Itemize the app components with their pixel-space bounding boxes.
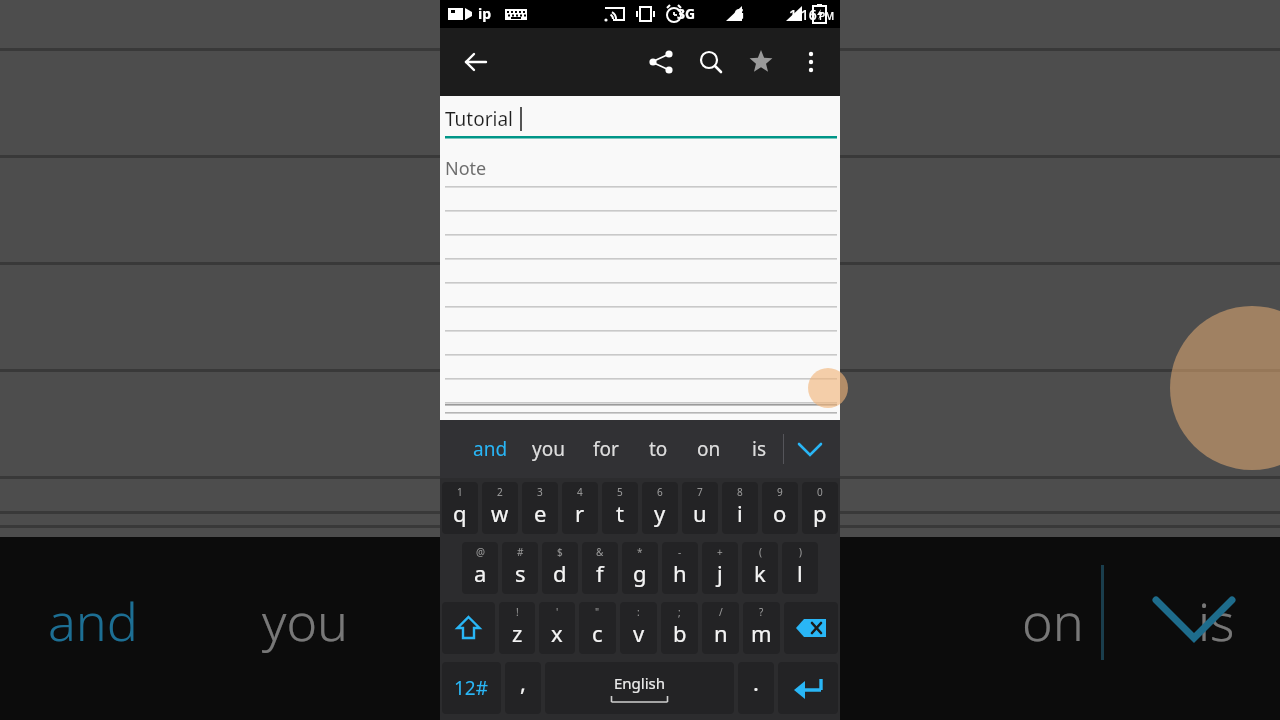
button[interactable]: on [683,420,735,478]
staticText: a [474,558,487,588]
button[interactable]: @ [462,542,498,594]
staticText: is [1198,585,1235,656]
staticText: : [637,605,640,619]
staticText: 0 [817,485,823,499]
button[interactable]: 4 [562,482,598,534]
button[interactable]: : [620,602,657,654]
staticText: g [633,558,647,588]
button[interactable]: & [582,542,618,594]
staticText: 2 [497,485,503,499]
staticText: you [532,436,565,462]
button[interactable]: Back [452,38,500,86]
staticText: 5 [617,485,623,499]
staticText: # [517,545,524,559]
button[interactable]: . [738,662,774,714]
staticText: h [673,558,687,588]
staticText: o [773,498,787,528]
button[interactable]: Collapse suggestions [784,420,836,478]
staticText: y [654,498,666,528]
staticText: " [595,605,600,619]
staticText: on [1022,585,1084,656]
staticText: k [754,558,766,588]
staticText: + [717,545,723,559]
button[interactable]: to [634,420,683,478]
staticText: t [616,498,624,528]
button[interactable]: you [519,420,578,478]
staticText: p [813,498,827,528]
button[interactable]: ' [539,602,575,654]
staticText: m [751,618,772,648]
staticText: @ [476,545,485,559]
staticText: and [48,585,138,656]
button[interactable]: Enter [778,662,838,714]
staticText: , [520,667,526,697]
button[interactable]: * [622,542,658,594]
button[interactable]: 3 [522,482,558,534]
button[interactable]: Backspace [784,602,838,654]
button[interactable]: Share [636,37,686,87]
staticText: ( [759,545,762,559]
button[interactable]: ; [661,602,698,654]
staticText: G [734,4,745,23]
staticText: * [637,545,643,559]
staticText: ip [478,4,492,23]
button[interactable]: Shift [442,602,495,654]
button[interactable]: Favorite [736,37,786,87]
staticText: is [752,436,767,462]
button[interactable]: More options [786,37,836,87]
staticText: 12# [454,675,489,701]
button[interactable]: " [579,602,616,654]
staticText: . [753,667,759,697]
staticText: 4 [577,485,583,499]
button[interactable]: + [702,542,738,594]
staticText: ! [516,605,519,619]
button[interactable]: ! [499,602,535,654]
staticText: j [717,558,723,588]
staticText: i [737,498,743,528]
button[interactable]: Space [545,662,734,714]
button[interactable]: 0 [802,482,838,534]
button[interactable]: , [505,662,541,714]
button[interactable]: $ [542,542,578,594]
button[interactable]: - [662,542,698,594]
button[interactable]: ? [743,602,780,654]
staticText: ) [799,545,802,559]
button[interactable]: and [462,420,519,478]
button[interactable]: 12# [442,662,501,714]
button[interactable]: is [735,420,783,478]
button[interactable]: 1 [442,482,478,534]
staticText: c [592,618,603,648]
staticText: & [596,545,604,559]
staticText: English [614,673,666,693]
staticText: you [262,585,349,656]
staticText: z [512,618,523,648]
button[interactable]: 9 [762,482,798,534]
button[interactable]: ( [742,542,778,594]
staticText: 7 [697,485,703,499]
button[interactable]: 2 [482,482,518,534]
staticText: / [719,605,723,619]
staticText: r [575,498,585,528]
button[interactable]: 7 [682,482,718,534]
button[interactable]: 8 [722,482,758,534]
button[interactable]: ) [782,542,818,594]
button[interactable]: # [502,542,538,594]
button[interactable]: / [702,602,739,654]
button[interactable]: for [578,420,634,478]
staticText: 9 [777,485,783,499]
staticText: e [534,498,547,528]
staticText: ; [678,605,681,619]
staticText: Tutorial [445,106,514,132]
button[interactable]: 6 [642,482,678,534]
staticText: - [678,545,682,559]
staticText: s [515,558,526,588]
button[interactable]: 5 [602,482,638,534]
staticText: 1:16 [789,5,817,24]
staticText: 6 [657,485,663,499]
staticText: d [553,558,567,588]
staticText: 3G [677,4,696,23]
staticText: ' [556,605,559,619]
staticText: PM [819,9,835,23]
staticText: 3 [537,485,543,499]
button[interactable]: Search [686,37,736,87]
